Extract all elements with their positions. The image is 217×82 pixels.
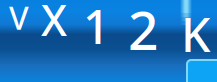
staticText: 2	[128, 0, 159, 65]
staticText: X	[41, 0, 67, 48]
staticText: V	[9, 0, 29, 38]
staticText: K	[181, 3, 210, 65]
staticText: 1	[83, 0, 110, 57]
